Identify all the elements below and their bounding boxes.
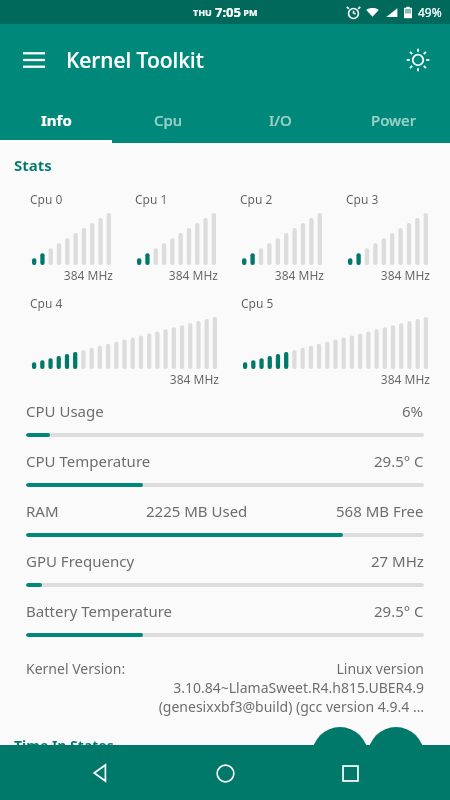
staticText: 384 MHz (14, 267, 113, 283)
staticText: Kernel Toolkit (66, 46, 204, 75)
staticText: Kernel Version: (26, 659, 126, 678)
staticText: 384 MHz (330, 267, 430, 283)
staticText: PM (241, 6, 258, 18)
staticText: Cpu (154, 110, 183, 130)
button[interactable]: Export (368, 727, 424, 783)
staticText: Cpu 0 (30, 191, 63, 207)
staticText: 568 MB Free (336, 501, 424, 521)
button[interactable]: Power (337, 96, 450, 143)
button[interactable]: Battery Temperature (0, 601, 450, 651)
staticText: Cpu 1 (135, 191, 168, 207)
button[interactable]: Cpu (112, 96, 224, 143)
staticText: GPU Frequency (26, 551, 135, 571)
staticText: Battery Temperature (26, 601, 173, 621)
staticText: Stats (14, 155, 52, 175)
staticText: 29.5° C (374, 451, 424, 471)
button[interactable]: Back (77, 749, 125, 797)
button[interactable]: Refresh (312, 727, 368, 783)
button[interactable]: Recent apps (326, 749, 374, 797)
staticText: THU (193, 6, 215, 18)
button[interactable]: I/O (224, 96, 337, 143)
staticText: 384 MHz (224, 267, 324, 283)
button[interactable]: Toggle brightness (394, 36, 442, 84)
staticText: RAM (26, 501, 59, 521)
button[interactable]: Info (0, 96, 112, 143)
staticText: 384 MHz (119, 267, 218, 283)
staticText: Info (41, 110, 72, 130)
staticText: Linux version 3.10.84~LlamaSweet.R4.h815… (152, 659, 424, 716)
staticText: Cpu 4 (30, 295, 63, 311)
staticText: 27 MHz (371, 551, 424, 571)
staticText: 7:05 (215, 3, 241, 21)
button[interactable]: RAM (0, 501, 450, 551)
button[interactable]: Home (201, 749, 249, 797)
staticText: 2225 MB Used (146, 501, 248, 521)
staticText: 384 MHz (14, 371, 219, 387)
staticText: Time In States (14, 736, 114, 755)
staticText: 49% (418, 4, 442, 20)
staticText: CPU Usage (26, 401, 104, 421)
staticText: Cpu 3 (346, 191, 379, 207)
staticText: CPU Temperature (26, 451, 151, 471)
staticText: 384 MHz (225, 371, 430, 387)
staticText: Cpu 5 (241, 295, 274, 311)
staticText: Power (371, 110, 417, 130)
staticText: 29.5° C (374, 601, 424, 621)
staticText: Cpu 2 (240, 191, 273, 207)
staticText: I/O (269, 110, 292, 130)
button[interactable]: CPU Usage (0, 401, 450, 451)
staticText: 6% (402, 401, 424, 421)
button[interactable]: CPU Temperature (0, 451, 450, 501)
button[interactable]: Open navigation drawer (10, 36, 58, 84)
button[interactable]: GPU Frequency (0, 551, 450, 601)
